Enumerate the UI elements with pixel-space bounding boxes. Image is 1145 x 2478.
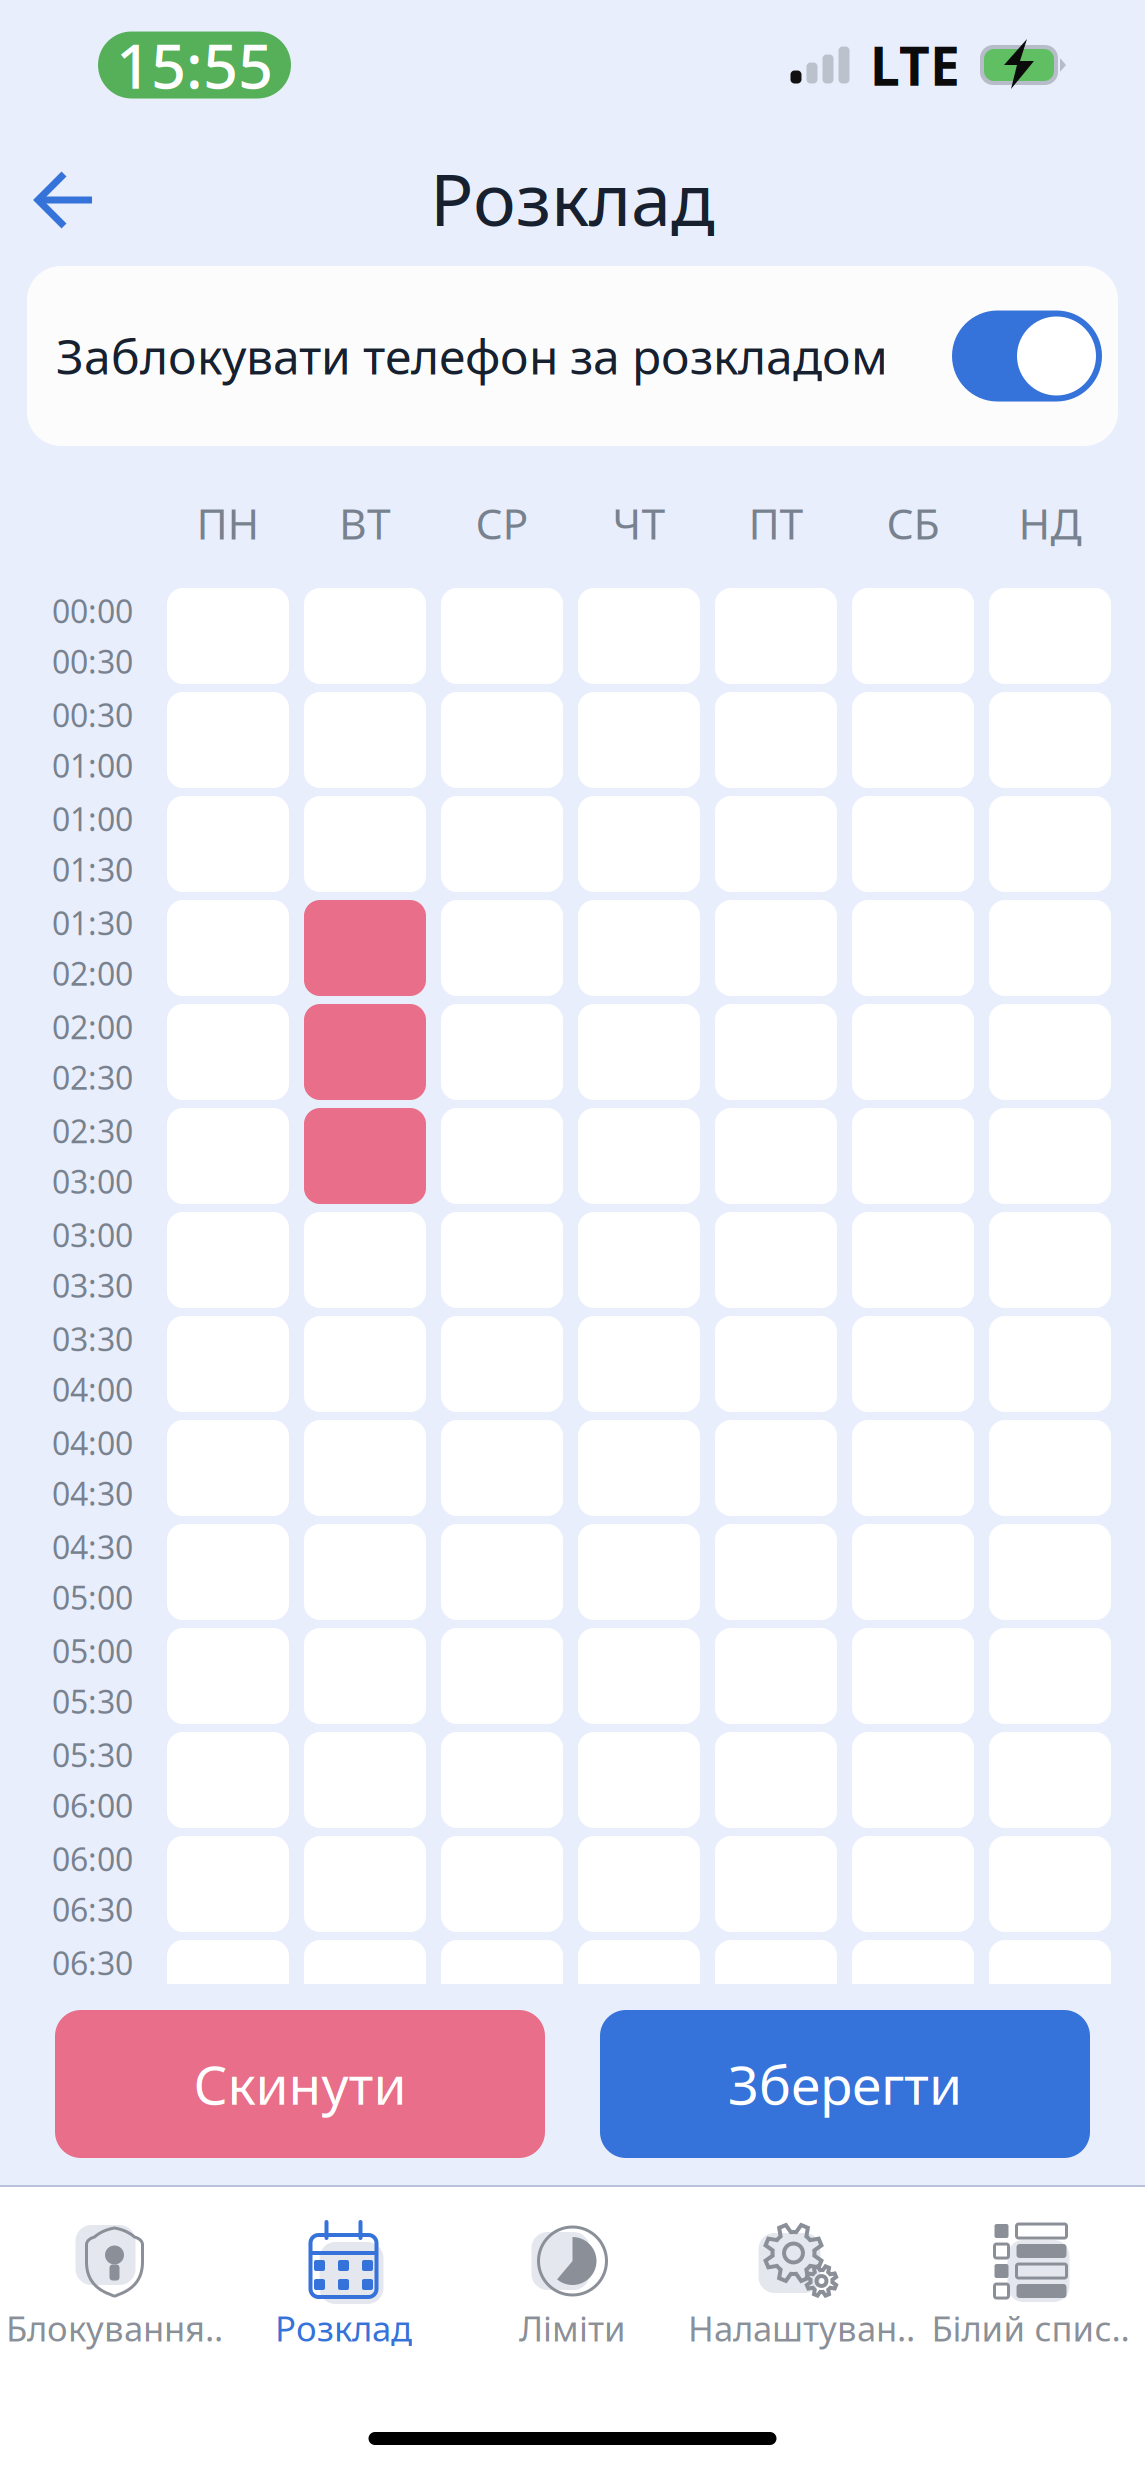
button[interactable] [167, 1940, 289, 2036]
button[interactable]: Back [9, 146, 117, 254]
button[interactable] [852, 1940, 974, 2036]
button[interactable]: Скинути [55, 2010, 545, 2158]
button[interactable] [441, 1940, 563, 2036]
button[interactable] [304, 900, 426, 996]
button[interactable]: Налаштуван.. [687, 2221, 916, 2355]
button[interactable]: Заблокувати телефон за розкладом [27, 266, 1118, 446]
button[interactable]: Блокування.. [0, 2221, 229, 2355]
button[interactable] [304, 1004, 426, 1100]
button[interactable] [304, 1108, 426, 1204]
button[interactable]: Зберегти [600, 2010, 1090, 2158]
button[interactable] [715, 1940, 837, 2036]
button[interactable] [304, 1940, 426, 2036]
button[interactable]: Ліміти [458, 2221, 687, 2355]
button[interactable] [578, 1940, 700, 2036]
button[interactable]: Білий спис.. [916, 2221, 1145, 2355]
button[interactable]: Розклад [229, 2221, 458, 2355]
